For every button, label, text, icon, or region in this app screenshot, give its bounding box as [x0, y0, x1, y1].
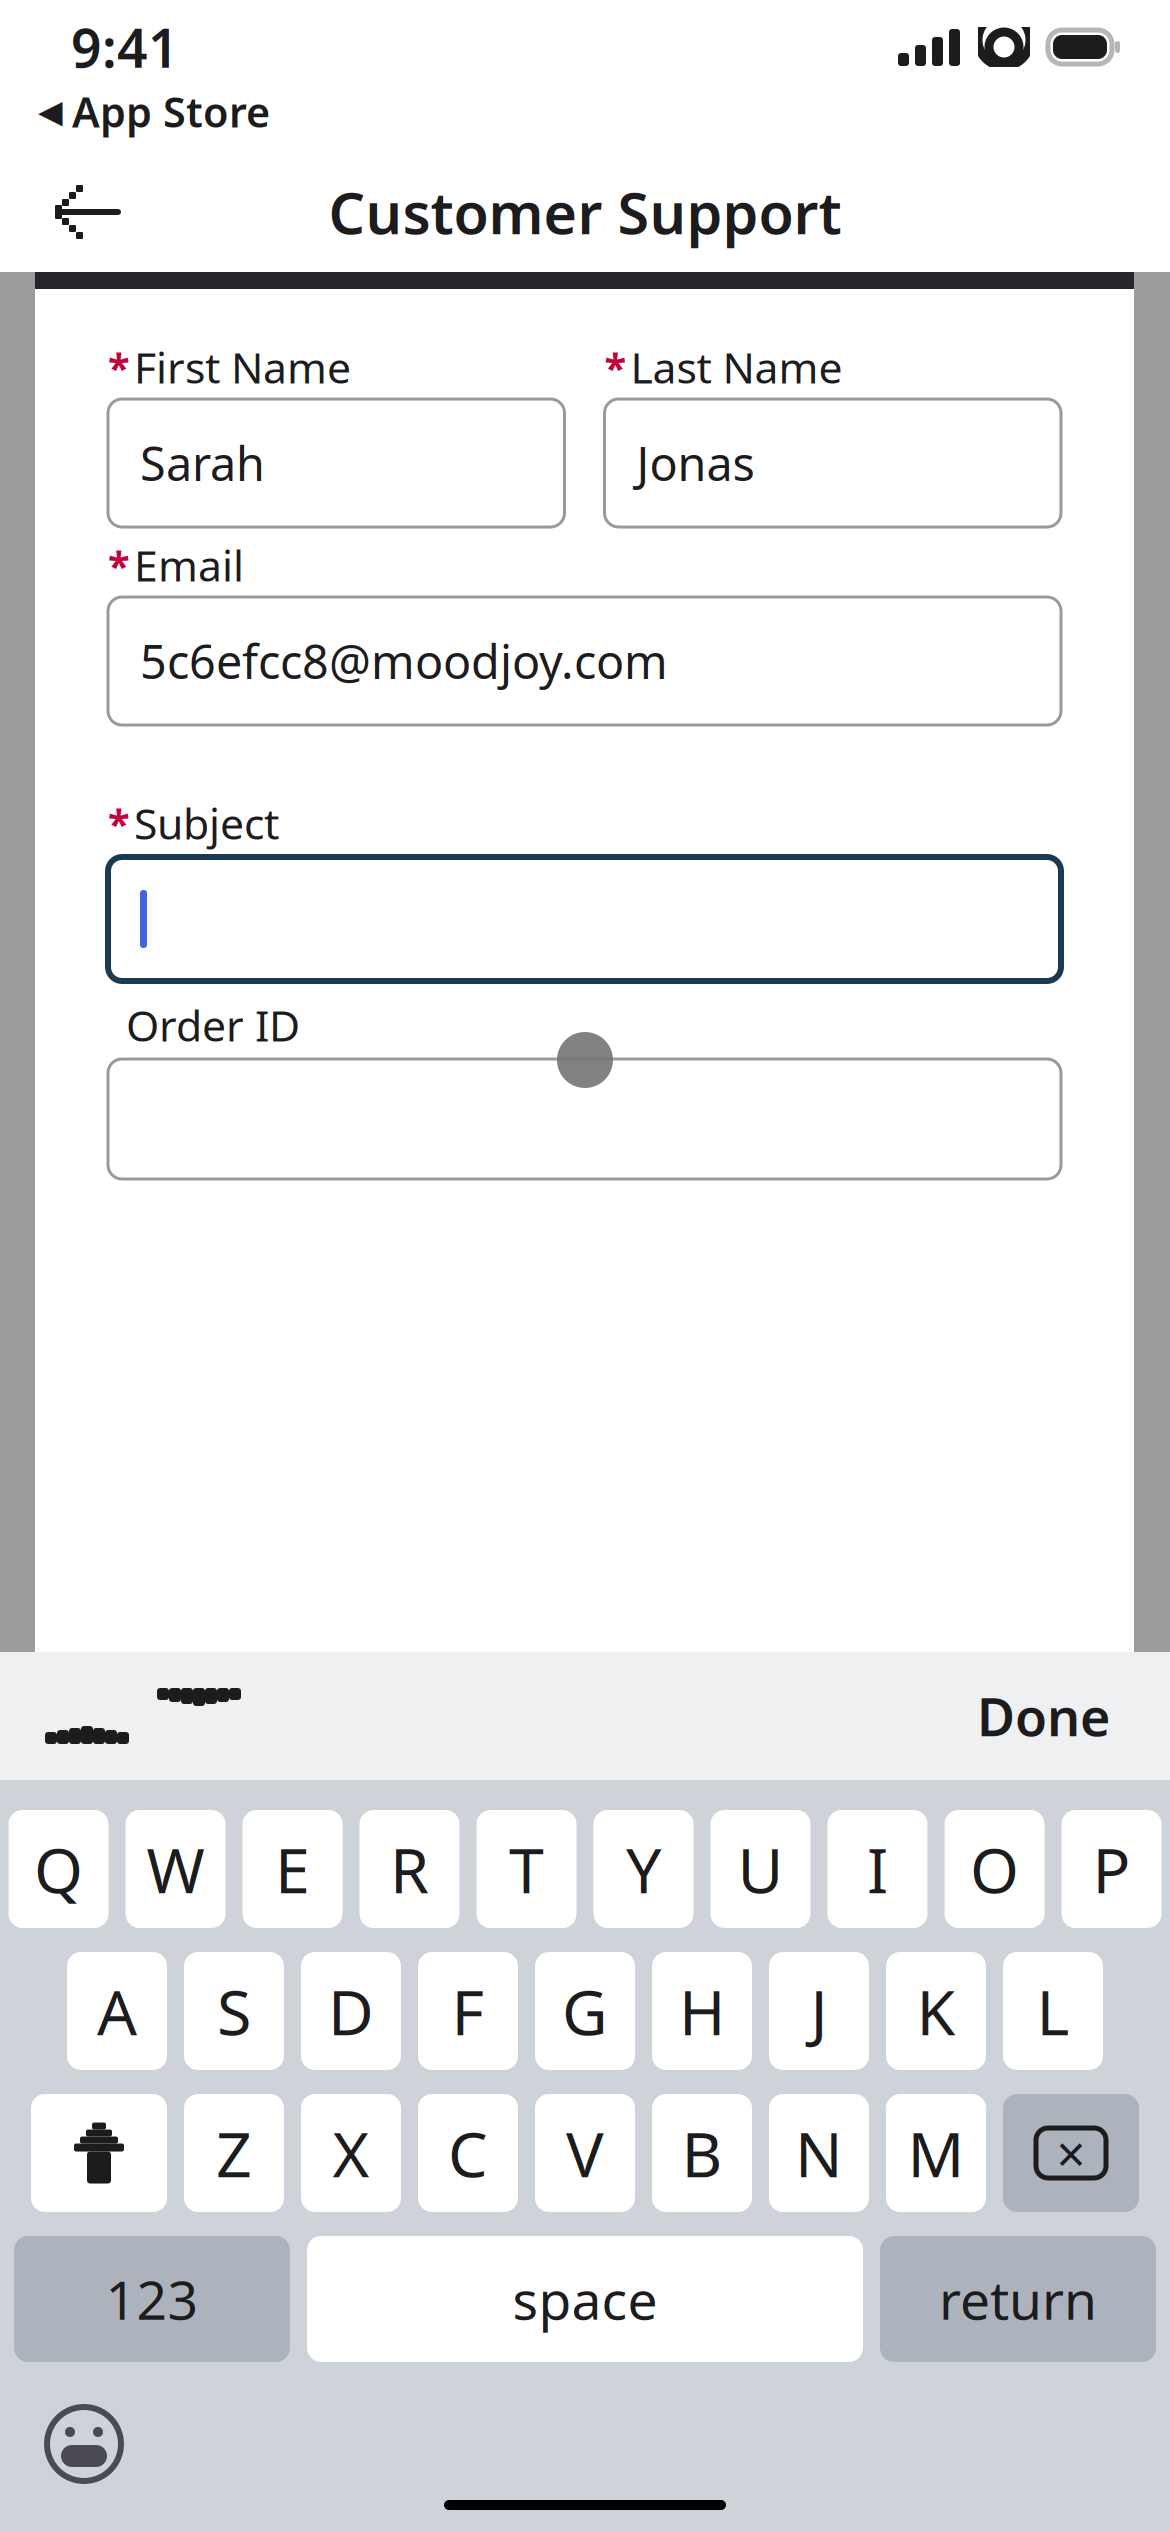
staticText: R: [390, 1827, 429, 1911]
button[interactable]: [108, 1059, 1061, 1179]
staticText: space: [512, 2264, 657, 2334]
staticText: B: [681, 2111, 722, 2195]
staticText: Z: [216, 2111, 252, 2195]
staticText: S: [217, 1969, 251, 2053]
staticText: Done: [977, 1681, 1110, 1751]
button[interactable]: S: [184, 1952, 284, 2070]
button[interactable]: C: [418, 2094, 518, 2212]
button[interactable]: K: [886, 1952, 986, 2070]
button[interactable]: Q: [8, 1810, 108, 1928]
staticText: *: [604, 340, 626, 393]
button[interactable]: return: [880, 2236, 1156, 2362]
button[interactable]: J: [769, 1952, 869, 2070]
button[interactable]: B: [652, 2094, 752, 2212]
button[interactable]: I: [827, 1810, 927, 1928]
button[interactable]: V: [535, 2094, 635, 2212]
staticText: App Store: [72, 84, 270, 139]
staticText: return: [939, 2264, 1097, 2334]
staticText: U: [737, 1827, 783, 1911]
button[interactable]: A: [67, 1952, 167, 2070]
button[interactable]: E: [242, 1810, 342, 1928]
button[interactable]: X: [301, 2094, 401, 2212]
button[interactable]: D: [301, 1952, 401, 2070]
staticText: D: [328, 1969, 374, 2053]
button[interactable]: Previous field: [44, 1673, 130, 1759]
staticText: J: [810, 1969, 827, 2053]
button[interactable]: O: [944, 1810, 1044, 1928]
staticText: Order ID: [126, 997, 300, 1053]
staticText: C: [448, 2111, 488, 2195]
staticText: E: [275, 1827, 310, 1911]
button[interactable]: Next field: [156, 1673, 242, 1759]
button[interactable]: Emoji keyboard: [36, 2396, 132, 2492]
staticText: ×: [1056, 2119, 1085, 2187]
button[interactable]: Y: [593, 1810, 693, 1928]
button[interactable]: 123: [14, 2236, 290, 2362]
staticText: K: [916, 1969, 955, 2053]
button[interactable]: Delete: [1003, 2094, 1139, 2212]
staticText: Subject: [134, 795, 279, 851]
staticText: 9:41: [71, 12, 179, 82]
button[interactable]: T: [476, 1810, 576, 1928]
button[interactable]: [108, 857, 1061, 981]
staticText: M: [907, 2111, 964, 2195]
button[interactable]: 5c6efcc8@moodjoy.com: [108, 597, 1061, 725]
staticText: W: [146, 1827, 204, 1911]
button[interactable]: Shift: [31, 2094, 167, 2212]
staticText: T: [509, 1827, 544, 1911]
button[interactable]: P: [1061, 1810, 1161, 1928]
button[interactable]: N: [769, 2094, 869, 2212]
staticText: G: [562, 1969, 608, 2053]
staticText: *: [108, 538, 130, 591]
button[interactable]: U: [710, 1810, 810, 1928]
staticText: X: [332, 2111, 369, 2195]
staticText: First Name: [134, 339, 351, 395]
staticText: Last Name: [630, 339, 842, 395]
button[interactable]: G: [535, 1952, 635, 2070]
staticText: H: [679, 1969, 725, 2053]
staticText: Jonas: [636, 432, 754, 494]
button[interactable]: Jonas: [604, 399, 1061, 527]
staticText: O: [970, 1827, 1019, 1911]
staticText: Y: [626, 1827, 661, 1911]
staticText: P: [1092, 1827, 1130, 1911]
button[interactable]: H: [652, 1952, 752, 2070]
staticText: Q: [34, 1827, 83, 1911]
button[interactable]: Done: [961, 1667, 1126, 1765]
staticText: A: [97, 1969, 137, 2053]
staticText: *: [108, 796, 130, 849]
staticText: Sarah: [140, 432, 265, 494]
staticText: Email: [134, 537, 244, 593]
staticText: L: [1036, 1969, 1069, 2053]
staticText: 5c6efcc8@moodjoy.com: [140, 630, 668, 692]
staticText: 123: [105, 2264, 198, 2334]
button[interactable]: Back: [38, 162, 138, 262]
staticText: V: [566, 2111, 604, 2195]
button[interactable]: W: [125, 1810, 225, 1928]
button[interactable]: ◀: [38, 80, 270, 143]
staticText: Customer Support: [328, 174, 841, 250]
button[interactable]: Sarah: [108, 399, 564, 527]
button[interactable]: R: [359, 1810, 459, 1928]
button[interactable]: space: [307, 2236, 863, 2362]
staticText: F: [451, 1969, 484, 2053]
staticText: N: [795, 2111, 843, 2195]
button[interactable]: L: [1003, 1952, 1103, 2070]
staticText: I: [867, 1827, 888, 1911]
staticText: *: [108, 340, 130, 393]
staticText: ◀: [38, 93, 63, 130]
button[interactable]: Z: [184, 2094, 284, 2212]
button[interactable]: F: [418, 1952, 518, 2070]
button[interactable]: M: [886, 2094, 986, 2212]
